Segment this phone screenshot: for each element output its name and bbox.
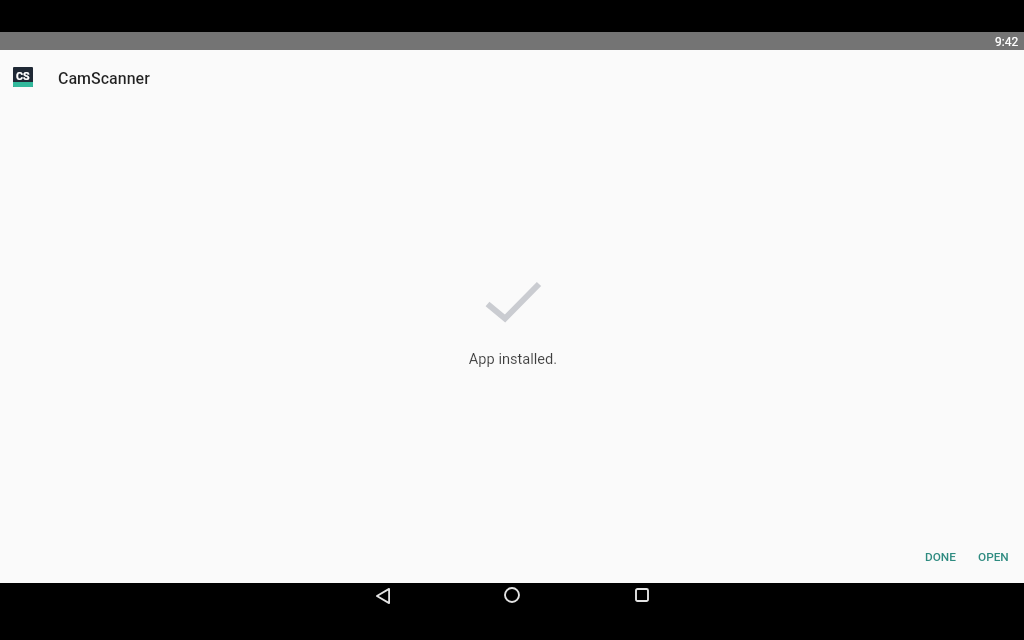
staticText: App installed. — [1, 350, 1024, 367]
button[interactable]: Home — [500, 583, 524, 607]
staticText: CamScanner — [58, 69, 150, 88]
button[interactable]: Recents — [630, 583, 654, 607]
button[interactable]: OPEN — [967, 541, 1020, 573]
staticText: DONE — [925, 550, 956, 564]
button[interactable]: DONE — [914, 541, 967, 573]
staticText: OPEN — [978, 550, 1009, 564]
staticText: CS — [16, 70, 30, 83]
button[interactable]: Back — [371, 584, 395, 608]
staticText: 9:42 — [995, 35, 1019, 49]
